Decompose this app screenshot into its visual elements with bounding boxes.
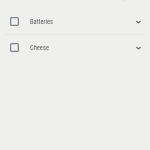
button[interactable]: Toggle Batteries <box>0 8 150 34</box>
button[interactable]: Toggle Cheese <box>0 34 150 60</box>
button[interactable]: Expand Cheese <box>130 34 147 60</box>
button[interactable]: Toggle Cheese <box>0 34 24 60</box>
button[interactable]: Expand Batteries <box>130 8 147 34</box>
staticText: Cheese <box>30 44 49 52</box>
staticText: Batteries <box>30 18 54 26</box>
button[interactable]: Toggle Batteries <box>0 8 24 34</box>
